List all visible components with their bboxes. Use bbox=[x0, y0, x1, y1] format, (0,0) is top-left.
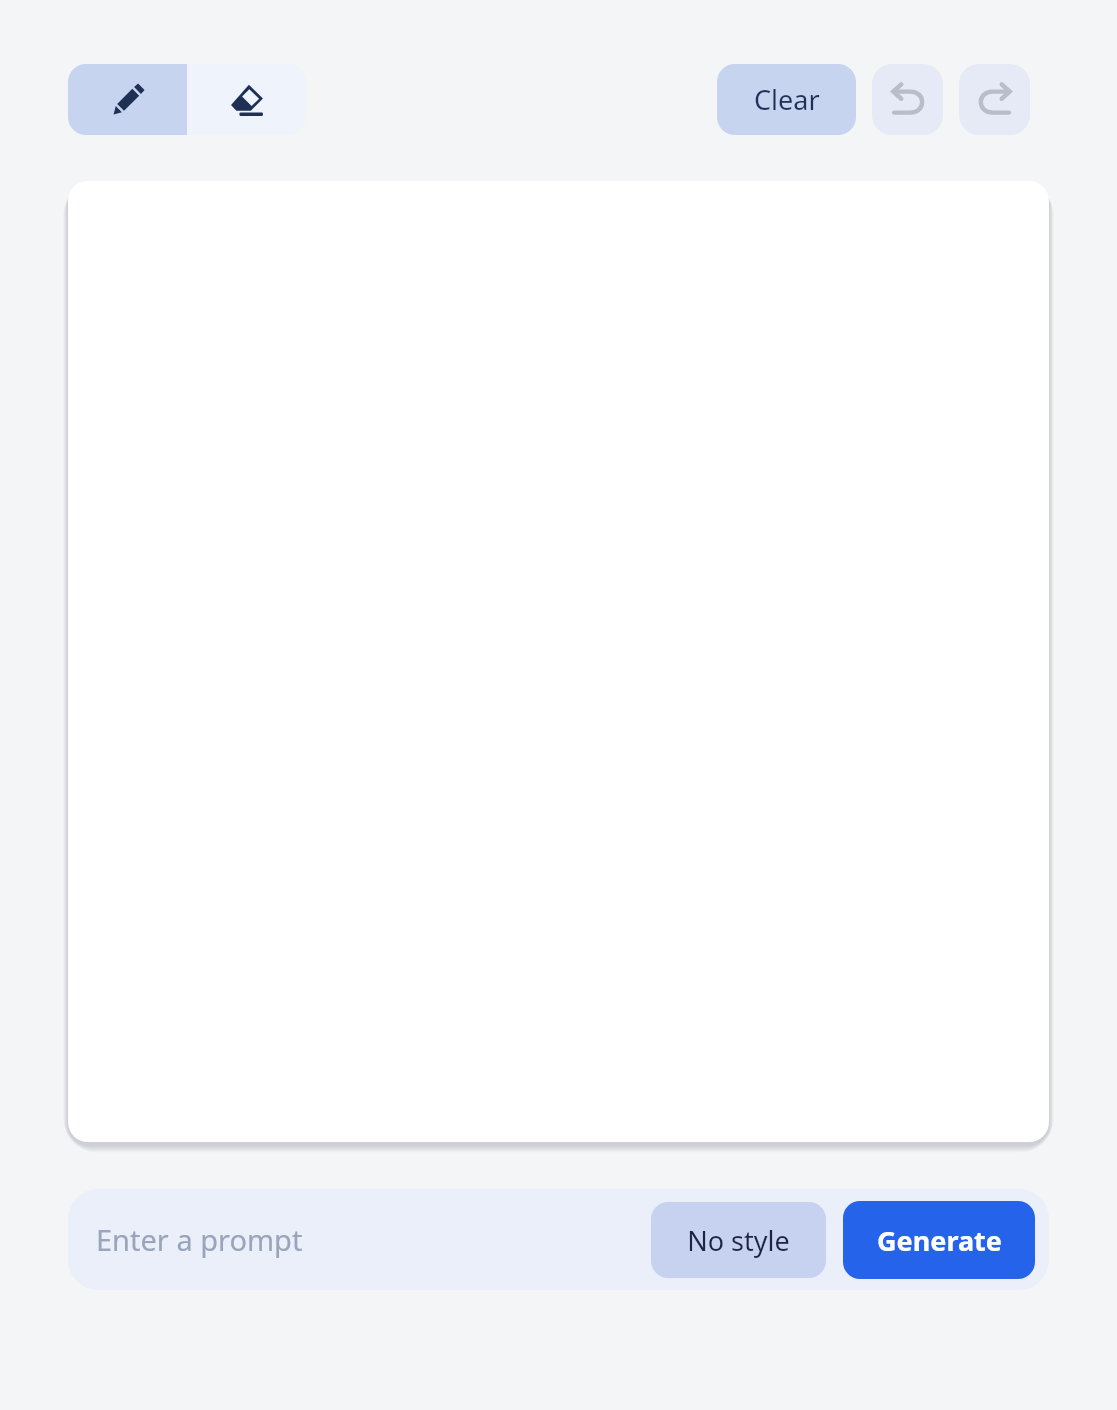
staticText: Clear bbox=[754, 81, 820, 118]
button[interactable]: Enter a prompt bbox=[82, 1189, 651, 1290]
staticText: No style bbox=[687, 1222, 790, 1259]
button[interactable]: Clear bbox=[717, 64, 856, 135]
button[interactable]: Undo bbox=[872, 64, 943, 135]
button[interactable]: Pencil tool bbox=[68, 64, 187, 135]
button[interactable]: Eraser tool bbox=[187, 64, 306, 135]
button[interactable]: No style bbox=[651, 1202, 826, 1278]
button[interactable]: Redo bbox=[959, 64, 1030, 135]
button[interactable]: Generate bbox=[843, 1201, 1035, 1279]
staticText: Enter a prompt bbox=[96, 1220, 303, 1259]
staticText: Generate bbox=[877, 1222, 1002, 1259]
